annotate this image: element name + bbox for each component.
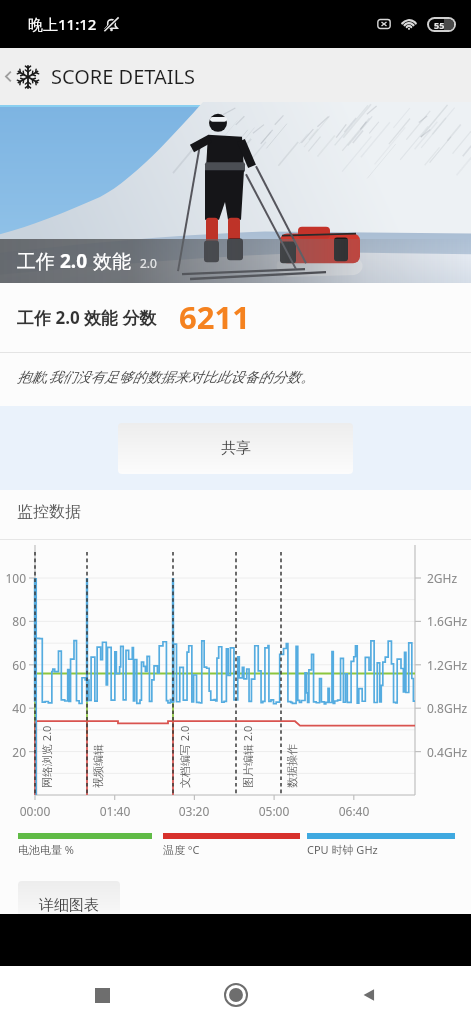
button[interactable]: Recent apps	[70, 966, 134, 1024]
staticText: 详细图表	[39, 896, 99, 915]
staticText: 工作	[17, 248, 60, 274]
button[interactable]: 共享	[118, 423, 353, 474]
staticText: 数据操作	[285, 744, 299, 788]
staticText: 05:00	[252, 803, 296, 819]
staticText: 100	[0, 570, 26, 586]
staticText: 网络浏览 2.0	[39, 725, 54, 788]
staticText: 温度 °C	[163, 842, 200, 857]
staticText: 文档编写 2.0	[177, 725, 192, 788]
staticText: 2.0	[140, 255, 157, 271]
button[interactable]: Home	[204, 966, 268, 1024]
staticText: 6211	[179, 296, 250, 338]
staticText: 电池电量 %	[18, 842, 75, 857]
staticText: 00:00	[13, 803, 57, 819]
staticText: 1.6GHz	[427, 613, 468, 629]
staticText: SCORE DETAILS	[51, 63, 196, 90]
button[interactable]: 详细图表	[18, 881, 120, 929]
staticText: 共享	[221, 439, 251, 458]
staticText: 60	[0, 657, 26, 673]
button[interactable]: Back	[337, 966, 401, 1024]
staticText: 40	[0, 700, 26, 716]
staticText: 图片编辑 2.0	[240, 725, 255, 788]
staticText: 01:40	[93, 803, 137, 819]
staticText: 55	[434, 19, 445, 31]
staticText: 2GHz	[427, 570, 458, 586]
staticText: 03:20	[172, 803, 216, 819]
staticText: 2.0	[60, 248, 88, 274]
staticText: 20	[0, 744, 26, 760]
staticText: 06:40	[332, 803, 376, 819]
staticText: 0.8GHz	[427, 700, 468, 716]
staticText: 效能	[88, 248, 131, 274]
staticText: 监控数据	[17, 502, 81, 522]
button[interactable]: Back	[0, 63, 202, 90]
staticText: 80	[0, 613, 26, 629]
staticText: 工作 2.0 效能 分数	[17, 306, 157, 329]
other: Back	[2, 70, 15, 83]
staticText: 抱歉,我们没有足够的数据来对比此设备的分数。	[17, 367, 315, 386]
staticText: CPU 时钟 GHz	[307, 842, 378, 857]
staticText: 0.4GHz	[427, 744, 468, 760]
staticText: 1.2GHz	[427, 657, 468, 673]
staticText: 视频编辑	[91, 744, 105, 788]
staticText: 晚上11:12	[28, 14, 97, 34]
